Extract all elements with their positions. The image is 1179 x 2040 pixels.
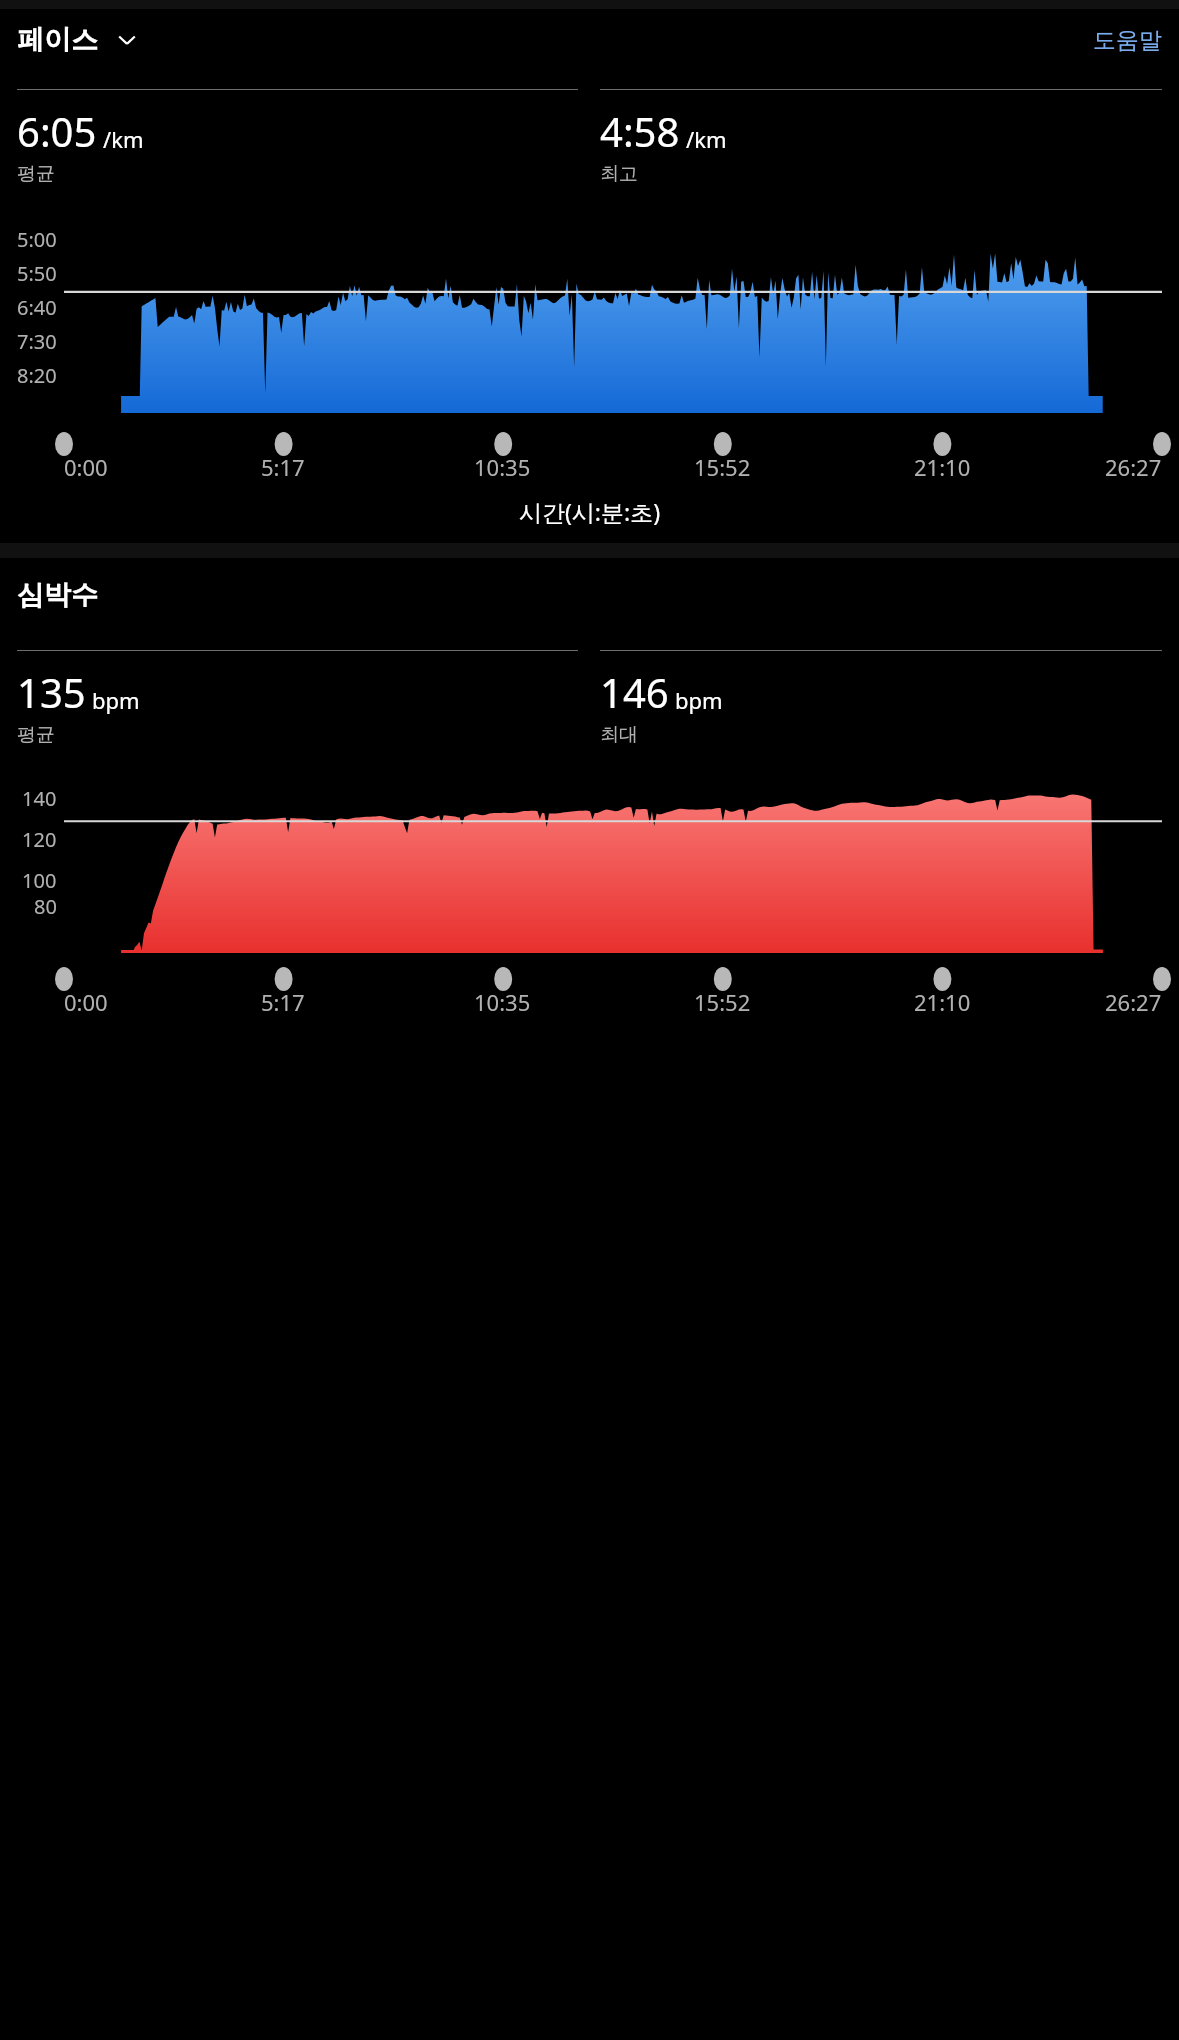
staticText: bpm bbox=[92, 685, 140, 715]
button[interactable]: 심박수 bbox=[17, 578, 98, 612]
staticText: 6:40 bbox=[17, 294, 57, 321]
staticText: 평균 bbox=[17, 162, 55, 186]
button[interactable]: 도움말 bbox=[1093, 26, 1162, 55]
staticText: 시간(시:분:초) bbox=[0, 496, 1179, 527]
staticText: 120 bbox=[22, 826, 57, 853]
staticText: /km bbox=[686, 124, 727, 154]
staticText: 최대 bbox=[600, 723, 638, 747]
staticText: /km bbox=[103, 124, 144, 154]
staticText: 26:27 bbox=[1105, 452, 1162, 482]
staticText: 146 bbox=[600, 665, 669, 719]
staticText: 21:10 bbox=[914, 987, 971, 1017]
staticText: 4:58 bbox=[600, 104, 680, 158]
staticText: 10:35 bbox=[474, 987, 531, 1017]
staticText: 5:17 bbox=[261, 987, 305, 1017]
staticText: 21:10 bbox=[914, 452, 971, 482]
staticText: 15:52 bbox=[694, 452, 751, 482]
staticText: 80 bbox=[34, 893, 57, 920]
staticText: bpm bbox=[675, 685, 723, 715]
staticText: 100 bbox=[22, 867, 57, 894]
staticText: 심박수 bbox=[17, 578, 98, 612]
staticText: 페이스 bbox=[17, 23, 98, 57]
staticText: 7:30 bbox=[17, 328, 57, 355]
staticText: 0:00 bbox=[64, 987, 108, 1017]
staticText: 6:05 bbox=[17, 104, 97, 158]
staticText: 5:00 bbox=[17, 226, 57, 253]
staticText: 15:52 bbox=[694, 987, 751, 1017]
staticText: 8:20 bbox=[17, 362, 57, 389]
staticText: 최고 bbox=[600, 162, 638, 186]
button[interactable]: 페이스 bbox=[17, 23, 140, 57]
staticText: 5:17 bbox=[261, 452, 305, 482]
staticText: 도움말 bbox=[1093, 26, 1162, 55]
staticText: 평균 bbox=[17, 723, 55, 747]
staticText: 10:35 bbox=[474, 452, 531, 482]
staticText: 135 bbox=[17, 665, 86, 719]
staticText: 0:00 bbox=[64, 452, 108, 482]
staticText: 140 bbox=[22, 785, 57, 812]
staticText: 5:50 bbox=[17, 260, 57, 287]
staticText: 26:27 bbox=[1105, 987, 1162, 1017]
